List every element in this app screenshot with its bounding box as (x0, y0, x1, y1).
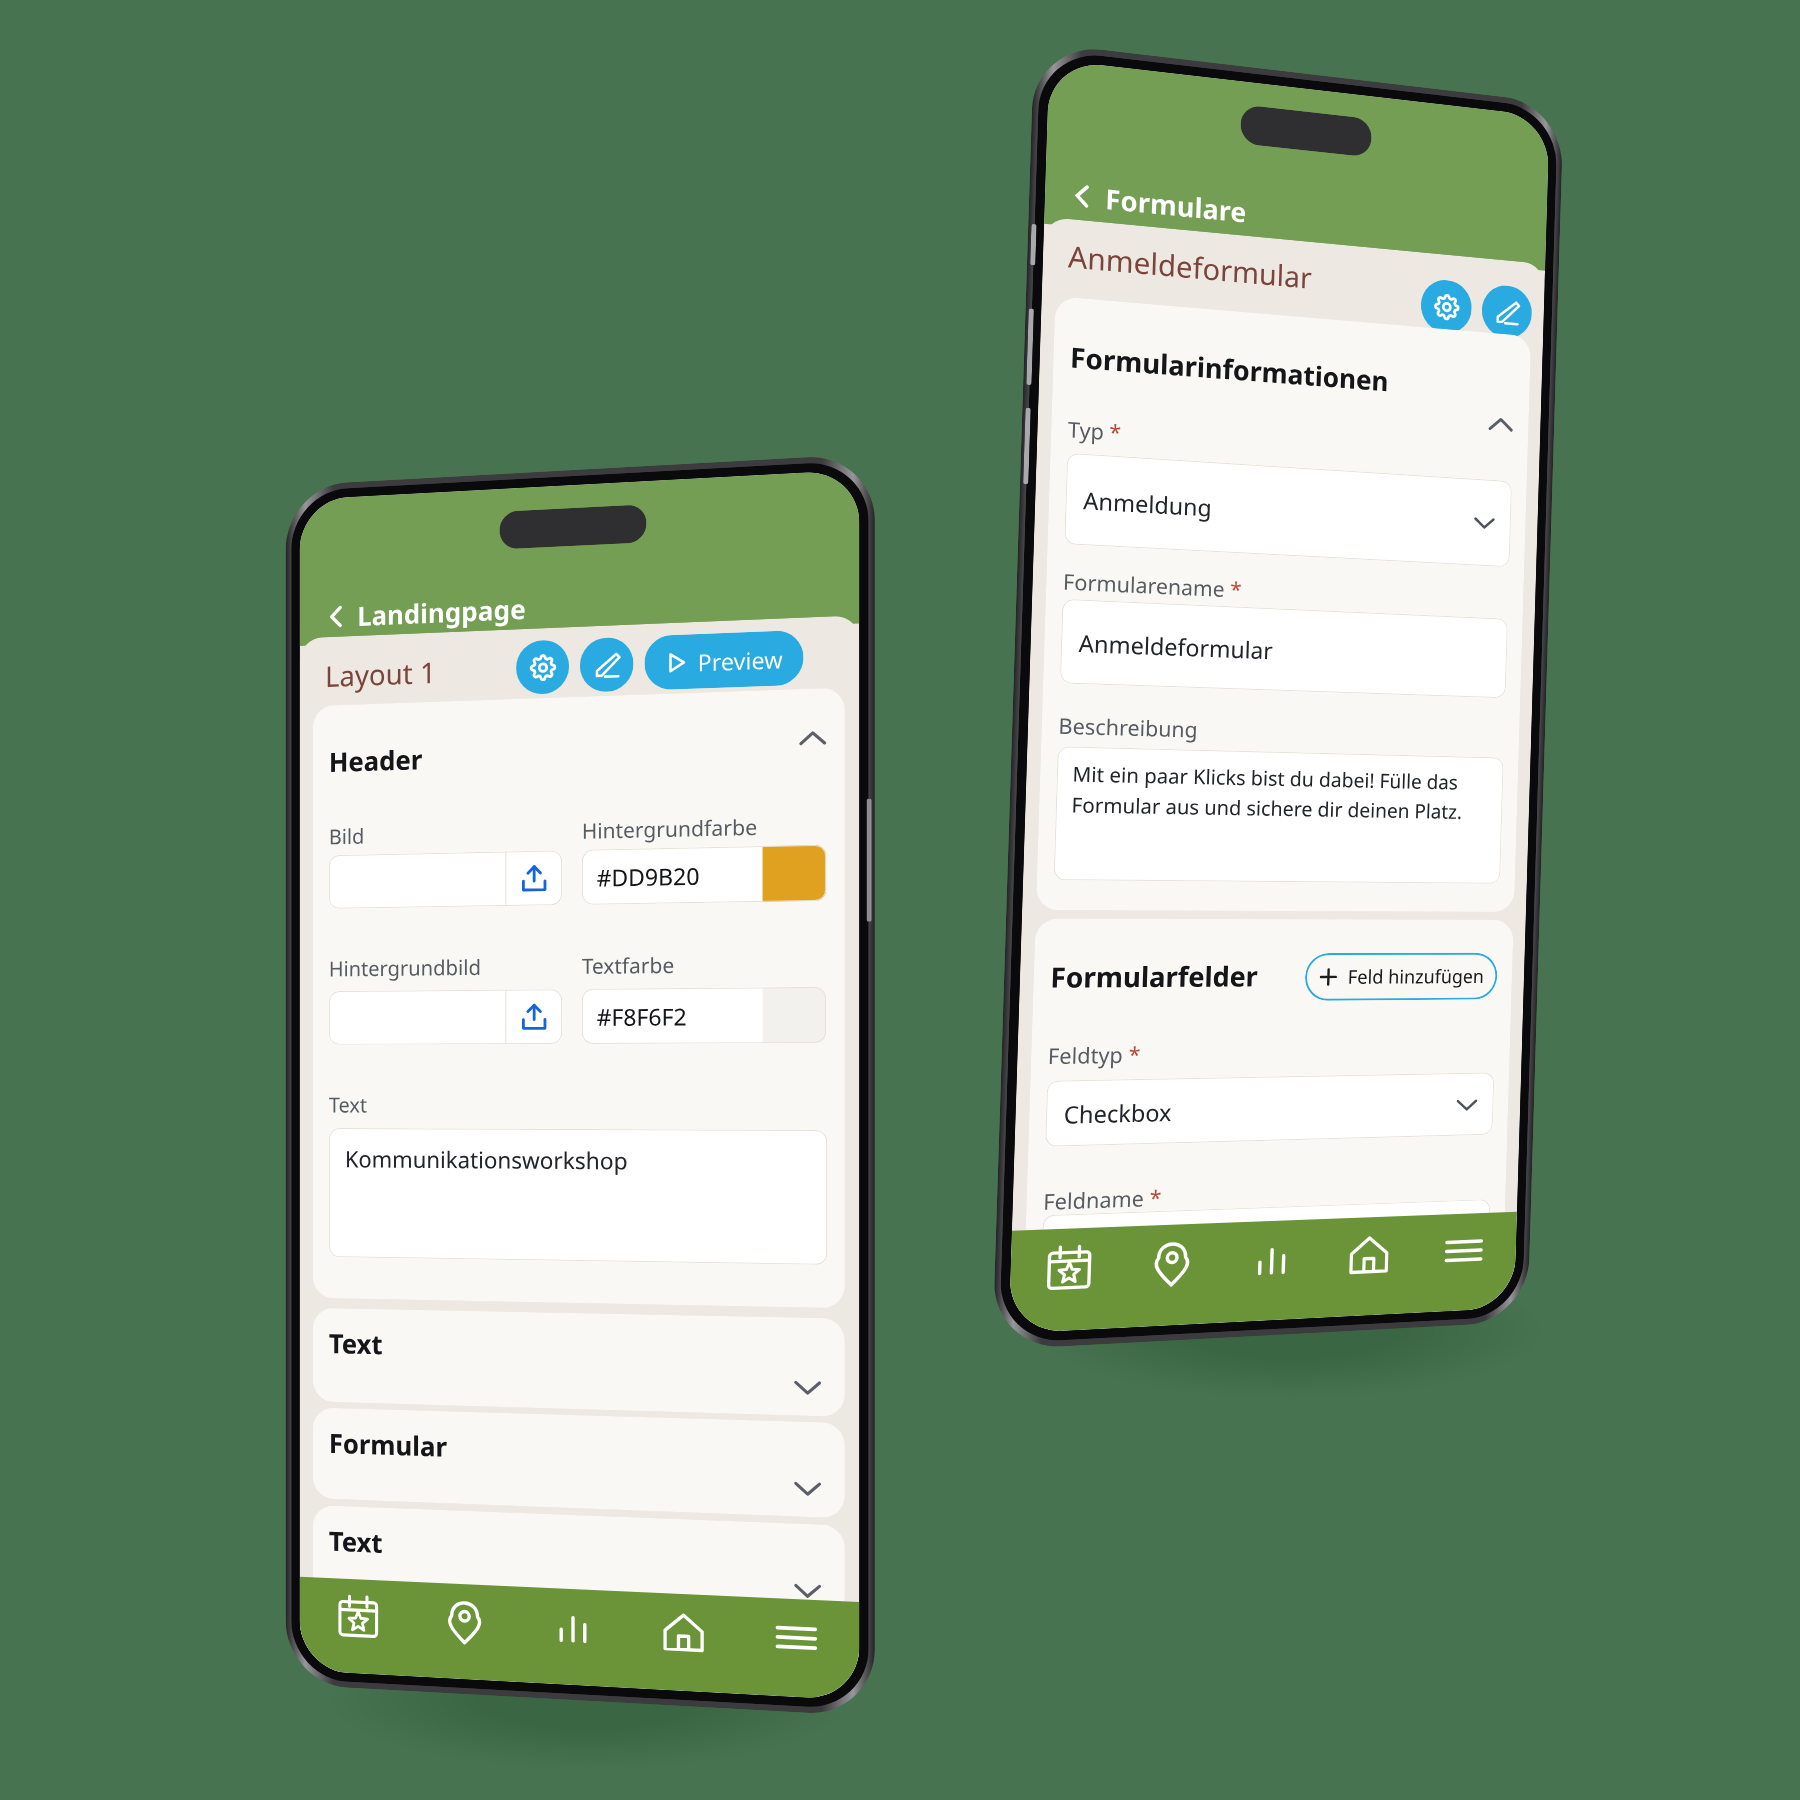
button[interactable]: Events (305, 1577, 411, 1676)
staticText: Anmeldeformular (1067, 235, 1312, 297)
staticText: Hintergrundbild (329, 953, 481, 983)
staticText: Feldname (1043, 1184, 1145, 1217)
button[interactable]: Feld hinzufügen (1304, 953, 1498, 1001)
staticText: Hintergrundfarbe (582, 813, 757, 846)
staticText: Formular (329, 1424, 447, 1465)
staticText: Layout 1 (325, 652, 437, 695)
button[interactable]: Preview (644, 630, 804, 690)
staticText: Beschreibung (1058, 711, 1198, 745)
staticText: Feld hinzufügen (1347, 963, 1485, 990)
button[interactable]: Checkbox (1045, 1072, 1494, 1147)
staticText: Formularfelder (1050, 957, 1258, 996)
button[interactable]: Anmeldeformular (1060, 599, 1508, 698)
staticText: Mit ein paar Klicks bist du dabei! Fülle… (1071, 760, 1463, 825)
button[interactable]: Home (627, 1591, 739, 1694)
button[interactable]: Events (1015, 1227, 1122, 1333)
button[interactable]: #F8F6F2 (582, 987, 826, 1044)
button[interactable]: Formulare (1069, 176, 1247, 231)
staticText: * (1128, 1040, 1141, 1070)
staticText: Textfarbe (582, 951, 674, 981)
staticText: Anmeldung (1083, 484, 1472, 537)
button[interactable]: Upload (329, 989, 562, 1045)
staticText: Formularinformationen (1070, 338, 1390, 399)
staticText: Kommunikationsworkshop (345, 1143, 628, 1175)
staticText: * (1149, 1183, 1162, 1213)
staticText: Preview (698, 643, 783, 677)
button[interactable]: Home (1319, 1215, 1418, 1318)
button[interactable]: Statistics (1220, 1219, 1322, 1323)
button[interactable]: Kommunikationsworkshop (329, 1128, 827, 1265)
staticText: * (1109, 417, 1122, 448)
staticText: * (1230, 575, 1242, 605)
button[interactable]: Anmeldung (1064, 453, 1512, 567)
staticText: Text (329, 1325, 383, 1362)
button[interactable]: Locations (411, 1582, 518, 1682)
staticText: Text (329, 1522, 383, 1561)
button[interactable]: Upload (329, 850, 562, 909)
staticText: Anmeldeformular (1078, 626, 1273, 665)
button[interactable]: Edit (1481, 283, 1533, 340)
button[interactable]: Text (313, 1308, 845, 1417)
button[interactable]: Locations (1119, 1223, 1223, 1328)
button[interactable]: Menu (739, 1596, 853, 1700)
staticText: #F8F6F2 (597, 1000, 763, 1032)
button[interactable] (1041, 1199, 1490, 1281)
button[interactable]: Menu (1415, 1212, 1511, 1313)
staticText: Landingpage (357, 590, 526, 634)
staticText: Typ (1067, 415, 1105, 447)
staticText: Formulare (1105, 179, 1247, 231)
button[interactable]: Statistics (518, 1586, 627, 1688)
button[interactable]: Text (313, 1505, 845, 1621)
button[interactable]: Collapse (1484, 406, 1518, 444)
button[interactable]: Landingpage (325, 590, 526, 635)
staticText: Header (329, 741, 423, 780)
staticText: Feldtyp (1047, 1040, 1124, 1071)
button[interactable]: #DD9B20 (582, 845, 826, 905)
staticText: Bild (329, 822, 365, 851)
staticText: Formularename (1062, 567, 1226, 604)
button[interactable]: Edit (580, 637, 633, 693)
button[interactable]: Mit ein paar Klicks bist du dabei! Fülle… (1053, 746, 1504, 884)
staticText: Checkbox (1063, 1090, 1455, 1130)
button[interactable]: Collapse (794, 720, 831, 758)
button[interactable]: Settings (1420, 278, 1472, 335)
button[interactable]: Formular (313, 1407, 845, 1518)
staticText: Text (329, 1091, 368, 1119)
staticText: #DD9B20 (597, 858, 763, 893)
button[interactable]: Settings (516, 639, 569, 695)
